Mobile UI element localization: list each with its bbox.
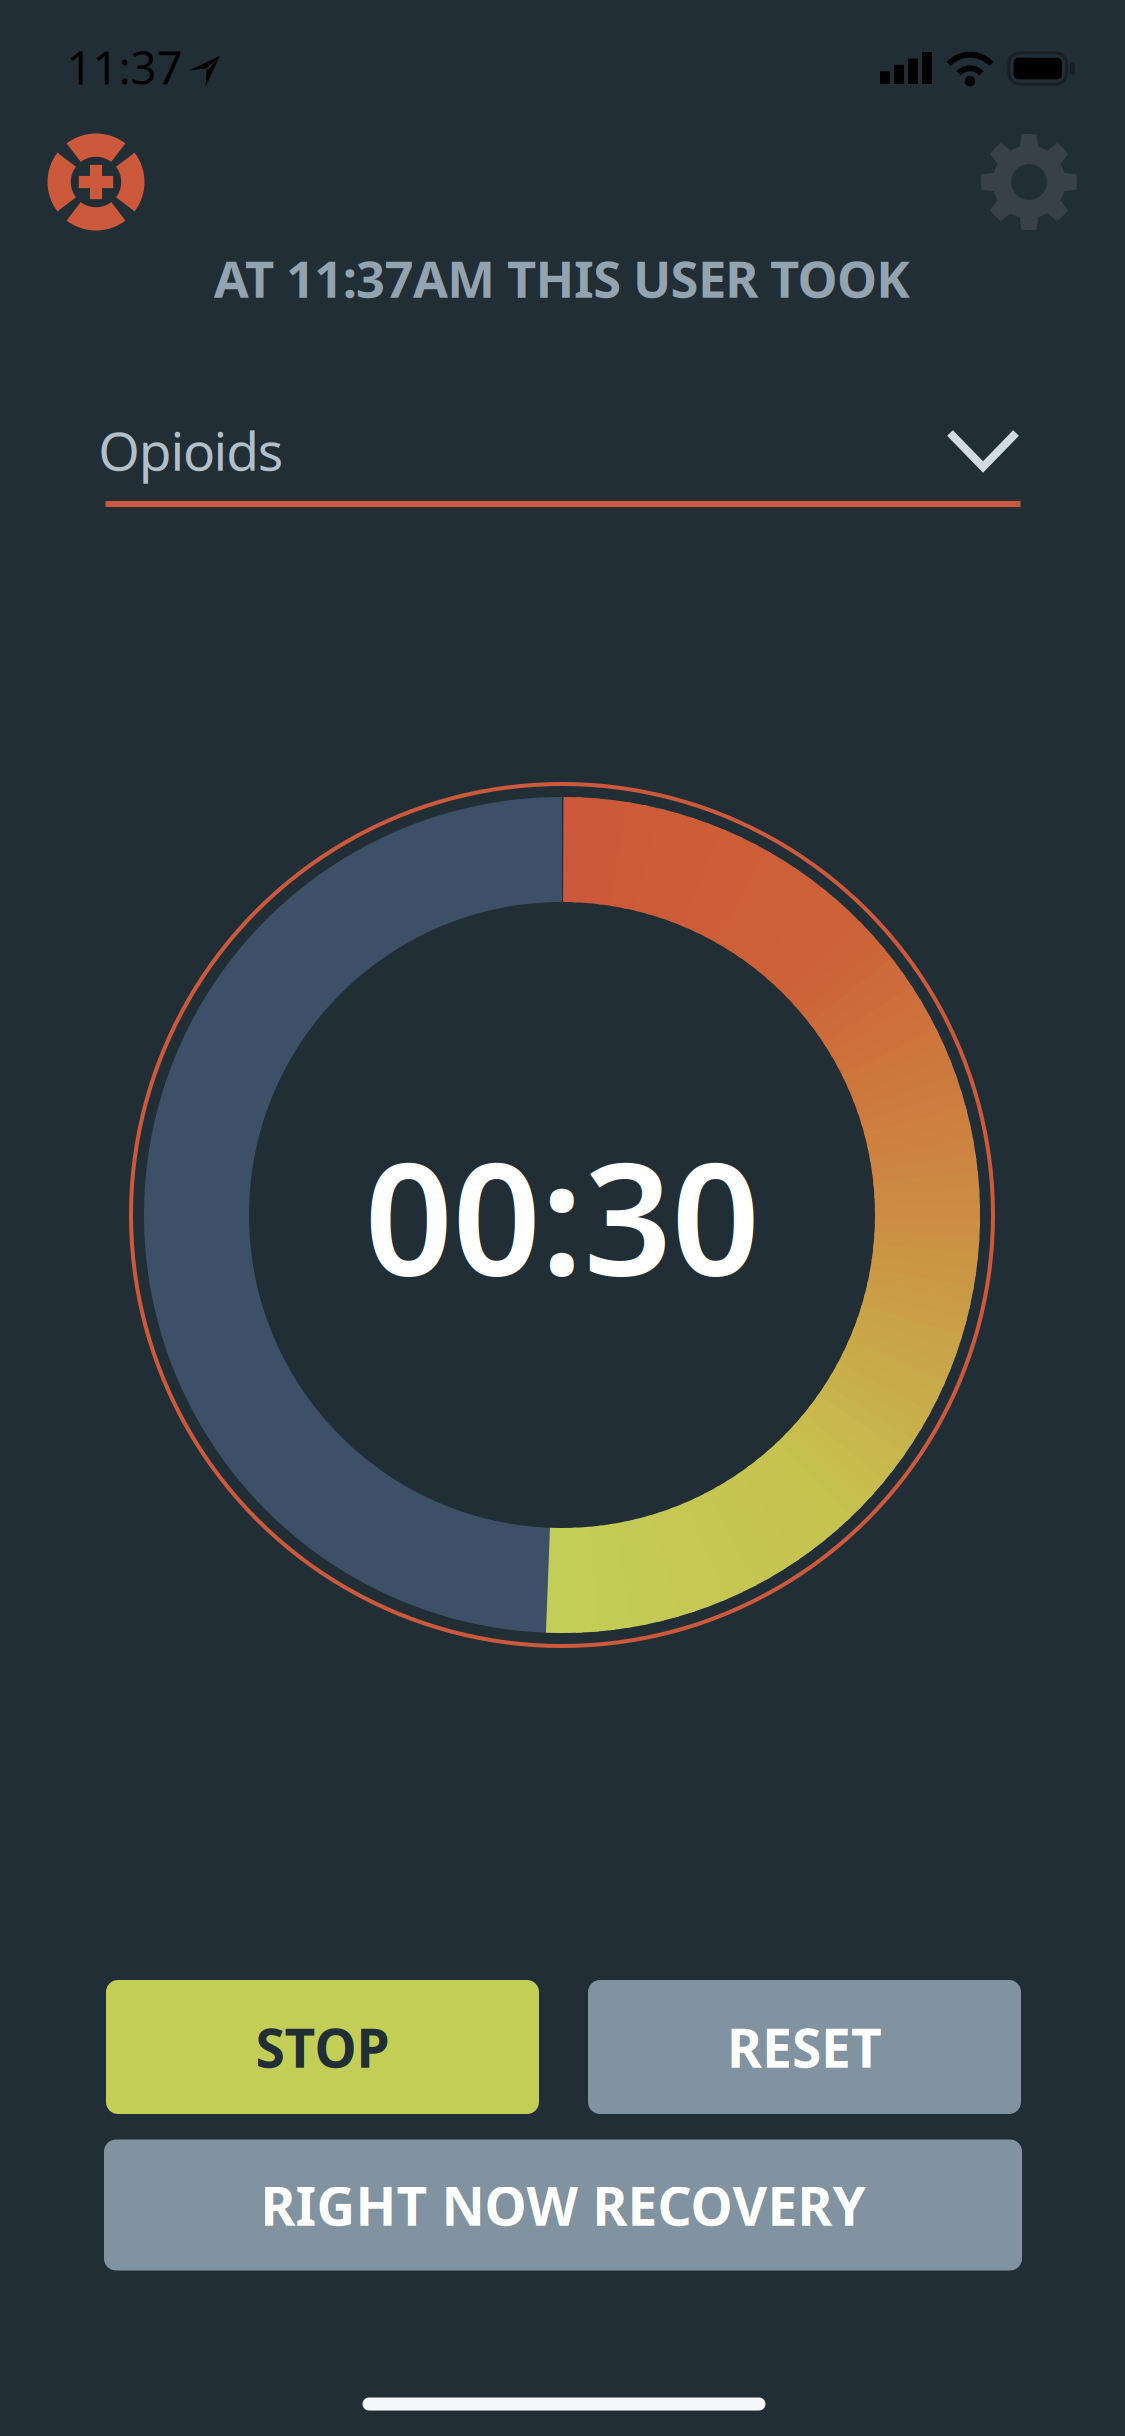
staticText: 00:30 <box>364 1112 759 1318</box>
button[interactable]: Opioids <box>105 397 1021 515</box>
staticText: RESET <box>727 2012 882 2082</box>
button[interactable]: RESET <box>588 1980 1021 2114</box>
staticText: RIGHT NOW RECOVERY <box>260 2170 865 2240</box>
staticText: STOP <box>255 2012 389 2082</box>
button[interactable]: Help <box>31 117 161 247</box>
button[interactable]: Settings <box>964 117 1094 247</box>
staticText: Opioids <box>98 415 284 485</box>
button[interactable]: STOP <box>106 1980 539 2114</box>
staticText: AT 11:37AM THIS USER TOOK <box>214 244 910 312</box>
button[interactable]: RIGHT NOW RECOVERY <box>104 2139 1022 2270</box>
staticText: 11:37 <box>66 37 182 97</box>
